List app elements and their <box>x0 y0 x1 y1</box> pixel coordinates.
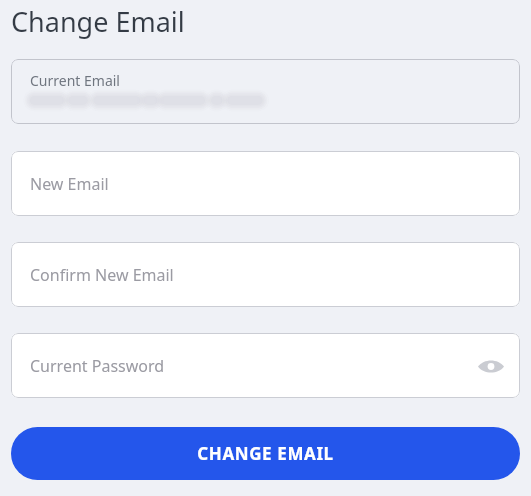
button[interactable]: New Email <box>11 151 520 216</box>
staticText: Change Email <box>11 3 185 40</box>
button[interactable]: Current Password <box>11 333 520 398</box>
staticText: Confirm New Email <box>30 264 174 286</box>
button[interactable]: Current Email <box>11 59 520 124</box>
button[interactable]: Show password <box>474 349 508 383</box>
staticText: Current Email <box>30 71 120 90</box>
staticText: Current Password <box>30 355 165 377</box>
staticText: CHANGE EMAIL <box>197 442 334 465</box>
staticText: New Email <box>30 173 109 195</box>
button[interactable]: CHANGE EMAIL <box>11 427 520 480</box>
button[interactable]: Confirm New Email <box>11 242 520 307</box>
